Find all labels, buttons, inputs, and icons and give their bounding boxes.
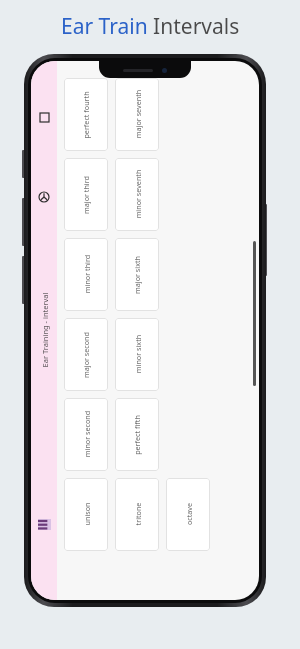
staticText: minor second [81,410,91,457]
staticText: tritone [132,502,142,525]
staticText: minor sixth [132,334,142,373]
staticText: minor seventh [132,169,142,218]
staticText: major sixth [132,256,142,294]
button[interactable]: tritone [115,478,159,551]
staticText: octave [183,502,193,525]
button[interactable]: minor sixth [115,318,159,391]
button[interactable]: perfect fourth [64,78,108,151]
button[interactable]: major third [64,158,108,231]
button[interactable]: unison [64,478,108,551]
staticText: major third [81,176,91,214]
button[interactable]: minor second [64,398,108,471]
button[interactable]: octave [166,478,210,551]
button[interactable]: perfect fifth [115,398,159,471]
button[interactable]: major seventh [115,78,159,151]
button[interactable]: major sixth [115,238,159,311]
staticText: minor third [81,254,91,293]
button[interactable]: List [34,514,54,534]
button[interactable]: major second [64,318,108,391]
staticText: perfect fifth [132,415,142,455]
staticText: Ear Training - interval [39,292,49,367]
button[interactable]: Stop [34,107,54,127]
staticText: major second [81,332,91,378]
staticText: Ear Train Intervals [61,12,240,41]
staticText: perfect fourth [81,91,91,139]
button[interactable]: minor third [64,238,108,311]
button[interactable]: minor seventh [115,158,159,231]
staticText: unison [81,502,91,525]
button[interactable]: Tempo [34,187,54,207]
staticText: major seventh [132,89,142,138]
